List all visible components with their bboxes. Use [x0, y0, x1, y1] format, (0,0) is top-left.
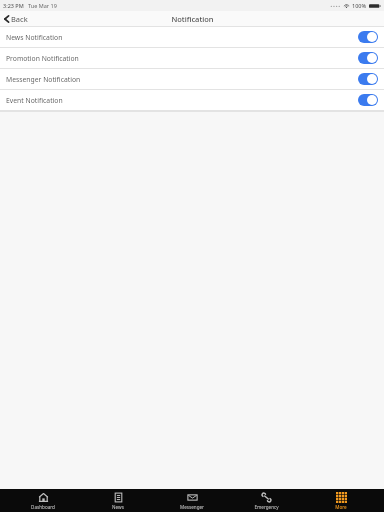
staticText: Messenger	[180, 504, 204, 510]
staticText: Notification	[171, 14, 214, 24]
button[interactable]: Emergency	[235, 490, 297, 512]
staticText: 3:23 PM	[3, 2, 24, 9]
button[interactable]: Toggle notification	[358, 31, 378, 43]
button[interactable]: News Notification	[0, 27, 384, 47]
button[interactable]: Dashboard	[12, 490, 74, 512]
staticText: News Notification	[6, 33, 63, 42]
button[interactable]: Toggle notification	[358, 73, 378, 85]
staticText: Back	[11, 14, 28, 24]
staticText: Promotion Notification	[6, 54, 79, 63]
staticText: Dashboard	[31, 504, 55, 510]
staticText: 100%	[352, 2, 367, 9]
button[interactable]: News	[87, 490, 149, 512]
button[interactable]: Toggle notification	[358, 94, 378, 106]
staticText: Event Notification	[6, 96, 63, 105]
button[interactable]: More	[310, 490, 372, 512]
staticText: Emergency	[254, 504, 279, 510]
button[interactable]: Back	[0, 12, 32, 26]
button[interactable]: Event Notification	[0, 90, 384, 110]
staticText: News	[112, 504, 124, 510]
staticText: More	[335, 504, 347, 510]
button[interactable]: Messenger	[161, 490, 223, 512]
button[interactable]: Promotion Notification	[0, 48, 384, 68]
staticText: Messenger Notification	[6, 75, 81, 84]
button[interactable]: Messenger Notification	[0, 69, 384, 89]
button[interactable]: Toggle notification	[358, 52, 378, 64]
staticText: Tue Mar 19	[28, 2, 57, 9]
